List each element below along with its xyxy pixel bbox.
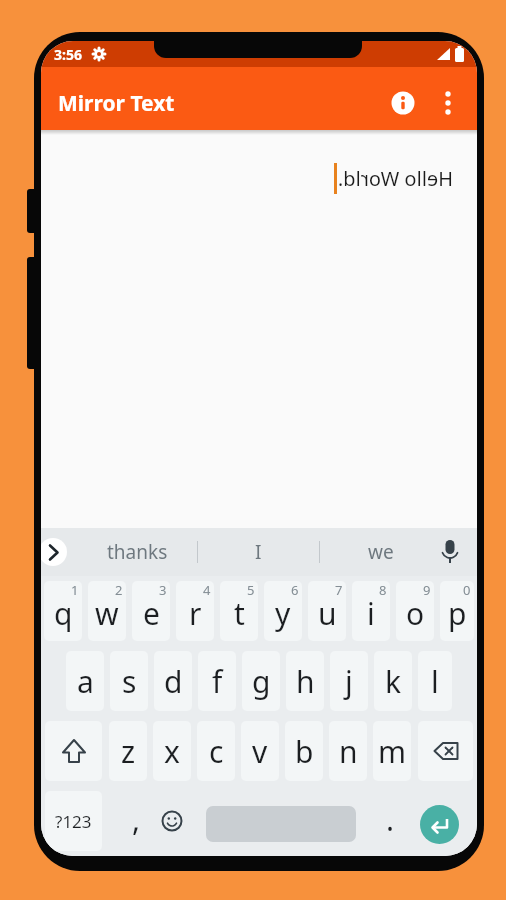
button[interactable]: f [198, 651, 236, 711]
staticText: p [448, 593, 467, 634]
staticText: i [367, 593, 375, 634]
staticText: u [318, 593, 337, 634]
staticText: 0 [463, 581, 471, 599]
staticText: we [368, 539, 394, 565]
staticText: 6 [291, 581, 299, 599]
button[interactable] [150, 786, 194, 856]
button[interactable] [418, 721, 473, 781]
staticText: 3:56 [54, 45, 82, 64]
staticText: g [252, 661, 271, 702]
staticText: b [295, 731, 314, 772]
button[interactable]: n [329, 721, 367, 781]
button[interactable]: b [285, 721, 323, 781]
staticText: m [378, 731, 407, 772]
button[interactable]: x [153, 721, 191, 781]
button[interactable]: y [264, 581, 302, 641]
staticText: w [95, 593, 119, 634]
button[interactable]: g [242, 651, 280, 711]
staticText: t [234, 593, 245, 634]
staticText: f [212, 661, 223, 702]
button[interactable]: h [286, 651, 324, 711]
button[interactable]: . [368, 786, 412, 856]
staticText: r [189, 593, 202, 634]
staticText: Mirror Text [58, 89, 175, 118]
button[interactable] [41, 538, 67, 566]
button[interactable]: r [176, 581, 214, 641]
staticText: . [386, 799, 395, 840]
button[interactable] [431, 86, 465, 120]
button[interactable] [383, 83, 423, 123]
button[interactable]: z [109, 721, 147, 781]
button[interactable]: a [66, 651, 104, 711]
button[interactable]: thanks [77, 528, 197, 576]
button[interactable]: q [44, 581, 82, 641]
staticText: v [252, 731, 268, 772]
staticText: s [122, 661, 137, 702]
staticText: 8 [379, 581, 387, 599]
button[interactable]: k [374, 651, 412, 711]
staticText: h [296, 661, 315, 702]
button[interactable]: v [241, 721, 279, 781]
button[interactable]: ?123 [45, 791, 102, 851]
button[interactable]: l [418, 651, 452, 711]
button[interactable]: j [330, 651, 368, 711]
staticText: j [345, 661, 353, 702]
staticText: thanks [107, 539, 168, 565]
button[interactable]: d [154, 651, 192, 711]
staticText: k [385, 661, 402, 702]
staticText: x [164, 731, 180, 772]
staticText: 4 [203, 581, 211, 599]
staticText: I [255, 539, 262, 565]
button[interactable]: we [320, 528, 441, 576]
staticText: 1 [71, 581, 79, 599]
staticText: , [132, 799, 141, 840]
staticText: o [406, 593, 425, 634]
button[interactable]: w [88, 581, 126, 641]
staticText: 3 [159, 581, 167, 599]
staticText: 7 [335, 581, 343, 599]
staticText: q [54, 593, 73, 634]
button[interactable]: o [396, 581, 434, 641]
staticText: a [77, 661, 94, 702]
button[interactable]: , [106, 786, 150, 856]
button[interactable]: u [308, 581, 346, 641]
staticText: 9 [423, 581, 431, 599]
button[interactable]: s [110, 651, 148, 711]
button[interactable]: p [440, 581, 474, 641]
staticText: z [121, 731, 136, 772]
staticText: d [164, 661, 183, 702]
staticText: 5 [247, 581, 255, 599]
button[interactable]: i [352, 581, 390, 641]
staticText: Hello World. [337, 165, 453, 192]
staticText: l [431, 661, 439, 702]
staticText: n [339, 731, 358, 772]
button[interactable]: m [373, 721, 411, 781]
staticText: y [275, 593, 291, 634]
button[interactable]: t [220, 581, 258, 641]
button[interactable]: c [197, 721, 235, 781]
staticText: ?123 [55, 810, 92, 833]
button[interactable]: e [132, 581, 170, 641]
staticText: e [143, 593, 160, 634]
button[interactable] [435, 537, 465, 567]
staticText: 2 [115, 581, 123, 599]
staticText: c [209, 731, 224, 772]
button[interactable] [412, 786, 477, 856]
button[interactable]: I [198, 528, 319, 576]
button[interactable] [45, 721, 102, 781]
